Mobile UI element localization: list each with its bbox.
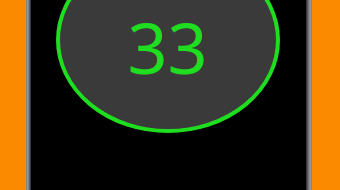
button[interactable]: Countdown timer showing 33 (0, 0, 340, 190)
